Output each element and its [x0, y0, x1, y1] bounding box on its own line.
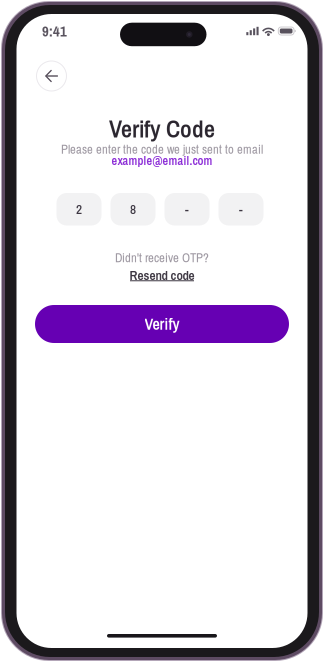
staticText: example@email.com [111, 152, 212, 169]
staticText: 9:41 [42, 21, 67, 41]
staticText: Verify [144, 313, 179, 335]
staticText: - [185, 200, 189, 218]
button[interactable]: Resend code [129, 266, 194, 285]
staticText: 8 [130, 200, 136, 218]
staticText: Please enter the code we just sent to em… [61, 141, 263, 158]
staticText: Resend code [129, 266, 194, 284]
staticText: Didn't receive OTP? [115, 249, 209, 266]
button[interactable]: Back [36, 61, 66, 91]
button[interactable]: Verify [35, 305, 289, 343]
staticText: - [239, 200, 243, 218]
staticText: 2 [76, 200, 82, 218]
staticText: Verify Code [109, 113, 215, 145]
